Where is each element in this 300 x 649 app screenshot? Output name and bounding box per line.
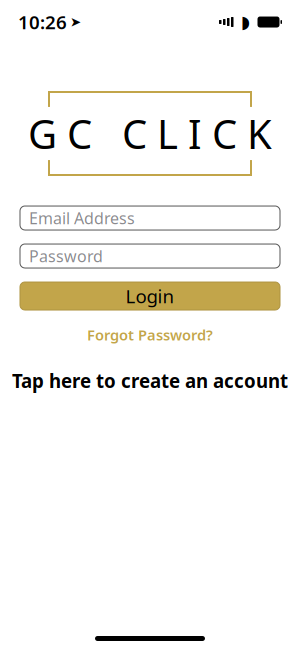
staticText: G C C L I C K	[28, 107, 272, 160]
staticText: Tap here to create an account	[12, 368, 288, 393]
staticText: ➤	[70, 14, 81, 29]
button[interactable]: Tap here to create an account	[2, 362, 298, 399]
button[interactable]: Login	[20, 282, 280, 310]
staticText: 10:26	[18, 10, 67, 34]
staticText: Email Address	[29, 207, 135, 229]
staticText: Login	[125, 284, 174, 308]
staticText: ◗	[241, 12, 250, 32]
staticText: Forgot Password?	[87, 325, 213, 344]
button[interactable]: Forgot Password?	[77, 319, 223, 350]
staticText: Password	[29, 245, 103, 267]
